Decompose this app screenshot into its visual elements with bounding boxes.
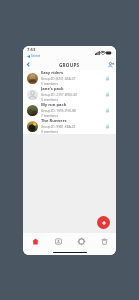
button[interactable]: Jane's pack — [23, 86, 116, 102]
button[interactable]: Home — [23, 233, 47, 249]
button[interactable]: Friends — [47, 233, 70, 249]
staticText: Group ID: 8231-GEA-07 — [41, 77, 76, 81]
staticText: Group ID: 9981-KBA-23 — [41, 125, 76, 129]
button[interactable]: The Runners — [23, 118, 116, 134]
staticText: Group ID: 1695-YHU-88 — [41, 109, 76, 113]
staticText: 7 members — [41, 114, 59, 118]
staticText: My run pack — [41, 102, 67, 108]
button[interactable]: Private group — [103, 106, 112, 115]
button[interactable]: Settings — [70, 233, 93, 249]
button[interactable]: Delete — [93, 233, 116, 249]
button[interactable]: Easy riders — [23, 70, 116, 86]
staticText: Jane's pack — [41, 86, 64, 92]
staticText: Easy riders — [41, 70, 64, 76]
button[interactable]: My run pack — [23, 102, 116, 118]
staticText: 9 members — [41, 130, 59, 134]
staticText: 5 members — [41, 82, 59, 86]
staticText: GROUPS — [59, 62, 80, 68]
staticText: 3 members — [41, 98, 59, 102]
staticText: 7:53 — [27, 47, 36, 53]
button[interactable]: Private group — [103, 90, 112, 99]
button[interactable]: Back — [23, 59, 34, 70]
button[interactable]: Private group — [103, 122, 112, 131]
staticText: Group ID: 2357-WDU-40 — [41, 93, 77, 97]
staticText: The Runners — [41, 118, 67, 124]
button[interactable]: Private group — [103, 74, 112, 83]
button[interactable]: Add group — [105, 59, 116, 70]
staticText: Secret — [31, 54, 41, 58]
button[interactable]: Create group — [97, 216, 110, 229]
